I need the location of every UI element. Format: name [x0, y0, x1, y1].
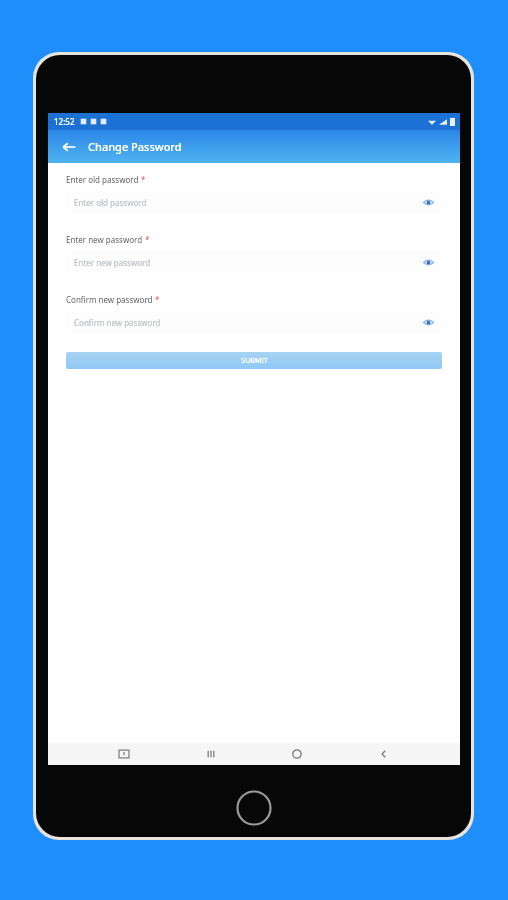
button[interactable]: Back [58, 136, 80, 158]
staticText: Confirm new password [74, 317, 161, 328]
button[interactable]: Show password [420, 314, 436, 330]
staticText: Enter new password [74, 257, 151, 268]
staticText: Enter old password [66, 174, 139, 185]
button[interactable]: Show password [420, 194, 436, 210]
button[interactable]: Home [286, 743, 308, 765]
button[interactable]: Recent apps [200, 743, 222, 765]
button[interactable]: SUBMIT [66, 352, 442, 369]
staticText: Confirm new password [66, 294, 153, 305]
button[interactable]: Show password [420, 254, 436, 270]
staticText: Change Password [88, 139, 182, 154]
staticText: Enter new password [66, 234, 143, 245]
button[interactable]: Confirm new password [66, 310, 442, 334]
staticText: Enter old password [74, 197, 147, 208]
staticText: 12:52 [54, 116, 75, 127]
button[interactable]: Enter old password [66, 190, 442, 214]
staticText: * [143, 234, 150, 245]
staticText: * [139, 174, 146, 185]
button[interactable]: Enter new password [66, 250, 442, 274]
staticText: SUBMIT [241, 356, 268, 366]
button[interactable]: Keyboard [113, 743, 135, 765]
button[interactable]: Back [373, 743, 395, 765]
staticText: * [153, 294, 160, 305]
